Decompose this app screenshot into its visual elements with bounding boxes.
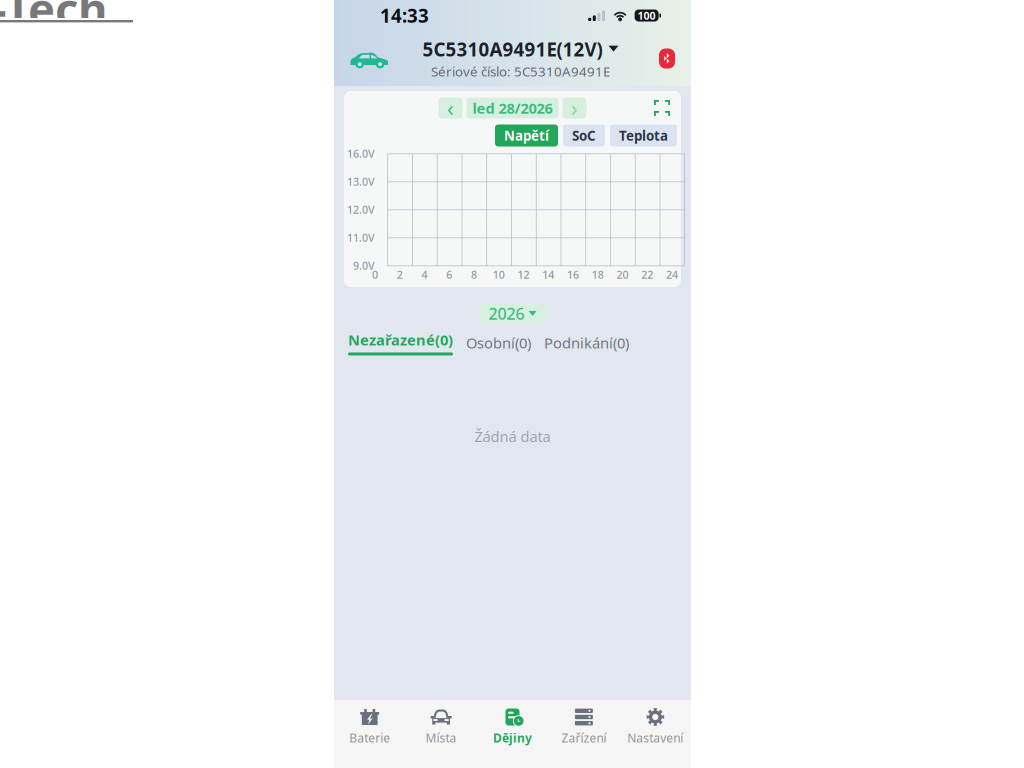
- staticText: 5C5310A9491E(12V): [422, 37, 602, 62]
- button[interactable]: ‹: [438, 97, 462, 118]
- staticText: 2: [397, 267, 403, 282]
- staticText: 100: [638, 8, 656, 23]
- button[interactable]: Místa: [405, 700, 477, 768]
- staticText: 16: [567, 267, 579, 282]
- button[interactable]: led 28/2026: [466, 97, 558, 118]
- button[interactable]: Teplota: [610, 124, 677, 146]
- staticText: Nezařazené(0): [348, 330, 453, 349]
- staticText: 9.0V: [353, 258, 375, 273]
- staticText: Baterie: [349, 730, 390, 746]
- button[interactable]: Podnikání(0): [544, 333, 629, 352]
- staticText: 8: [471, 267, 477, 282]
- button[interactable]: SoC: [563, 124, 605, 146]
- button[interactable]: Celá obrazovka: [654, 100, 670, 116]
- staticText: -Tech: [0, 0, 107, 38]
- staticText: 12.0V: [347, 202, 375, 217]
- staticText: 4: [421, 267, 427, 282]
- staticText: Podnikání(0): [544, 333, 629, 352]
- staticText: 14: [542, 267, 554, 282]
- staticText: SoC: [572, 127, 596, 144]
- staticText: Nastavení: [627, 730, 683, 746]
- button[interactable]: 2026: [479, 304, 545, 323]
- staticText: Místa: [426, 730, 457, 746]
- staticText: ‹: [447, 94, 454, 122]
- staticText: 24: [666, 267, 678, 282]
- staticText: Sériové číslo: 5C5310A9491E: [431, 62, 610, 80]
- staticText: Osobní(0): [466, 333, 531, 352]
- button[interactable]: Zařízení: [548, 700, 620, 768]
- staticText: 10: [493, 267, 505, 282]
- staticText: Napětí: [504, 127, 549, 144]
- staticText: Žádná data: [474, 426, 550, 446]
- staticText: 12: [517, 267, 529, 282]
- staticText: Zařízení: [561, 730, 606, 746]
- staticText: 14:33: [380, 3, 429, 28]
- staticText: Dějiny: [493, 730, 532, 746]
- button[interactable]: Nastavení: [620, 700, 691, 768]
- staticText: led 28/2026: [472, 98, 552, 118]
- button[interactable]: Nezařazené(0): [348, 330, 453, 355]
- staticText: Teplota: [619, 127, 668, 144]
- button[interactable]: 5C5310A9491E(12V): [422, 37, 618, 80]
- button[interactable]: Napětí: [495, 124, 558, 146]
- staticText: 18: [592, 267, 604, 282]
- staticText: 0: [372, 267, 378, 282]
- button[interactable]: Bluetooth: [656, 46, 678, 70]
- button[interactable]: Baterie: [334, 700, 405, 768]
- staticText: ›: [571, 94, 578, 122]
- staticText: 11.0V: [347, 230, 375, 245]
- button[interactable]: Osobní(0): [466, 333, 531, 352]
- staticText: 6: [446, 267, 452, 282]
- staticText: 20: [616, 267, 628, 282]
- staticText: 16.0V: [347, 146, 375, 161]
- staticText: 2026: [488, 303, 524, 324]
- button[interactable]: Dějiny: [477, 700, 548, 768]
- staticText: 13.0V: [347, 174, 375, 189]
- button[interactable]: ›: [562, 97, 586, 118]
- staticText: 22: [641, 267, 653, 282]
